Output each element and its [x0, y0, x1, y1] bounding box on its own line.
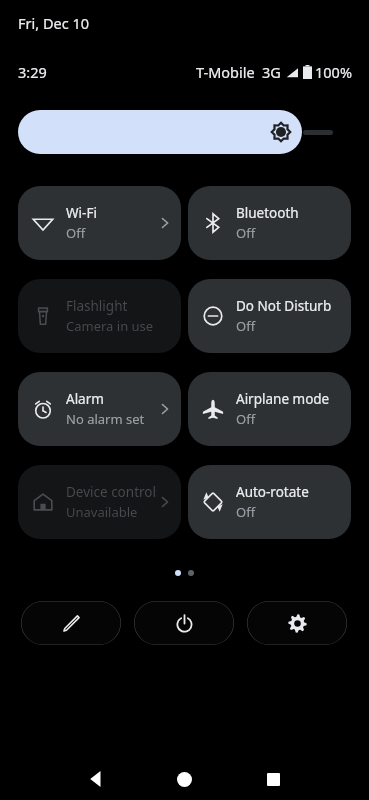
button[interactable]: Flashlight [18, 279, 181, 353]
staticText: Do Not Disturb [236, 297, 332, 315]
button[interactable]: Airplane mode [188, 372, 351, 446]
staticText: Off [66, 224, 86, 242]
button[interactable]: Recents [255, 764, 291, 794]
button[interactable]: Power [134, 601, 234, 645]
staticText: Camera in use [66, 317, 154, 335]
staticText: 100% [315, 62, 352, 82]
staticText: Off [236, 317, 256, 335]
button[interactable]: Auto-rotate [188, 465, 351, 539]
button[interactable]: Settings [247, 601, 347, 645]
staticText: Flashlight [66, 297, 128, 315]
staticText: Airplane mode [236, 390, 330, 408]
staticText: T-Mobile [196, 62, 255, 82]
staticText: Fri, Dec 10 [18, 13, 89, 33]
staticText: Off [236, 503, 256, 521]
button[interactable]: Do Not Disturb [188, 279, 351, 353]
staticText: Off [236, 410, 256, 428]
button[interactable]: Wi-Fi [18, 186, 181, 260]
button[interactable]: Device controls [18, 465, 181, 539]
staticText: 3:29 [18, 62, 47, 82]
staticText: Wi-Fi [66, 204, 97, 222]
staticText: Alarm [66, 390, 104, 408]
button[interactable]: Edit [21, 601, 121, 645]
staticText: 3G [262, 62, 281, 82]
button[interactable]: Home [166, 764, 202, 794]
staticText: No alarm set [66, 410, 145, 428]
button[interactable]: Back [78, 764, 114, 794]
staticText: Unavailable [66, 503, 138, 521]
staticText: Device controls [66, 483, 157, 501]
button[interactable]: Bluetooth [188, 186, 351, 260]
button[interactable]: Alarm [18, 372, 181, 446]
button[interactable]: Brightness [18, 110, 333, 154]
staticText: Off [236, 224, 256, 242]
staticText: Auto-rotate [236, 483, 309, 501]
staticText: Bluetooth [236, 204, 299, 222]
